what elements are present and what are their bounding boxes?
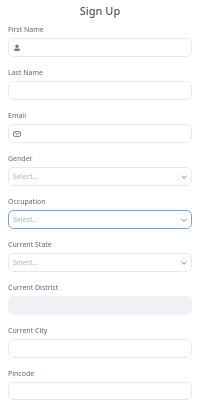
other: Open dropdown — [181, 174, 187, 180]
button[interactable]: Select... — [8, 167, 192, 186]
staticText: Select... — [13, 215, 39, 225]
other: Email — [13, 130, 21, 138]
staticText: Last Name — [8, 68, 44, 78]
other: Person — [13, 44, 21, 52]
button[interactable]: Email — [8, 124, 192, 143]
staticText: Select... — [13, 172, 39, 182]
button[interactable]: Select... — [8, 253, 192, 272]
button[interactable] — [8, 81, 192, 100]
staticText: Pincode — [8, 369, 35, 379]
staticText: Email — [8, 111, 26, 121]
staticText: Occupation — [8, 197, 46, 207]
staticText: Current City — [8, 326, 48, 336]
staticText: Sign Up — [8, 3, 192, 18]
button[interactable] — [8, 339, 192, 358]
button[interactable]: Select... — [8, 210, 192, 229]
other: Open dropdown — [181, 217, 187, 223]
staticText: Current District — [8, 283, 59, 293]
button[interactable] — [8, 382, 192, 400]
staticText: Current State — [8, 240, 52, 250]
staticText: First Name — [8, 25, 44, 35]
button[interactable]: Person — [8, 38, 192, 57]
staticText: Gender — [8, 154, 33, 164]
other: Open dropdown — [181, 260, 187, 266]
staticText: Select... — [13, 258, 39, 268]
